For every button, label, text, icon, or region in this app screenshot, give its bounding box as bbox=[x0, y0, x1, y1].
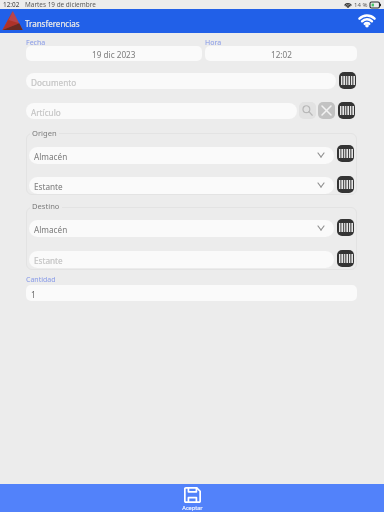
button[interactable]: WiFi bbox=[355, 9, 381, 33]
button[interactable]: Escanear código de barras bbox=[337, 176, 354, 193]
button[interactable]: Almacén bbox=[29, 147, 334, 164]
button[interactable]: Escanear código de barras bbox=[337, 250, 354, 267]
staticText: Cantidad bbox=[26, 275, 56, 285]
staticText: Origen bbox=[32, 128, 57, 138]
button[interactable]: 12:02 bbox=[205, 46, 357, 61]
staticText: 1 bbox=[31, 289, 36, 300]
button[interactable]: Almacén bbox=[29, 220, 334, 237]
staticText: 12:02 bbox=[271, 49, 292, 60]
button[interactable]: Buscar bbox=[299, 102, 316, 119]
staticText: 14 % bbox=[354, 1, 368, 9]
button[interactable]: Escanear código de barras bbox=[339, 72, 356, 89]
button[interactable]: Limpiar bbox=[318, 102, 335, 119]
staticText: Aceptar bbox=[182, 504, 203, 511]
staticText: Almacén bbox=[34, 224, 68, 235]
button[interactable]: Documento bbox=[26, 73, 336, 89]
button[interactable]: 19 dic 2023 bbox=[26, 46, 202, 61]
button[interactable]: Artículo bbox=[26, 103, 297, 119]
button[interactable]: Estante bbox=[29, 251, 334, 268]
staticText: Destino bbox=[32, 201, 60, 211]
staticText: Documento bbox=[31, 77, 77, 88]
button[interactable]: Estante bbox=[29, 177, 334, 194]
button[interactable]: Escanear código de barras bbox=[337, 145, 354, 162]
staticText: 12:02 bbox=[3, 0, 20, 9]
staticText: Hora bbox=[205, 38, 222, 48]
staticText: Transferencias bbox=[25, 18, 80, 29]
button[interactable]: Escanear código de barras bbox=[337, 219, 354, 236]
staticText: Almacén bbox=[34, 151, 68, 162]
button[interactable]: 1 bbox=[26, 285, 357, 301]
staticText: Estante bbox=[34, 255, 63, 266]
staticText: Artículo bbox=[31, 107, 61, 118]
staticText: Fecha bbox=[26, 38, 46, 48]
button[interactable]: Aceptar bbox=[170, 484, 215, 512]
staticText: 19 dic 2023 bbox=[92, 49, 136, 60]
button[interactable]: Escanear código de barras bbox=[338, 102, 355, 119]
staticText: Estante bbox=[34, 181, 63, 192]
staticText: Martes 19 de diciembre bbox=[25, 0, 96, 9]
